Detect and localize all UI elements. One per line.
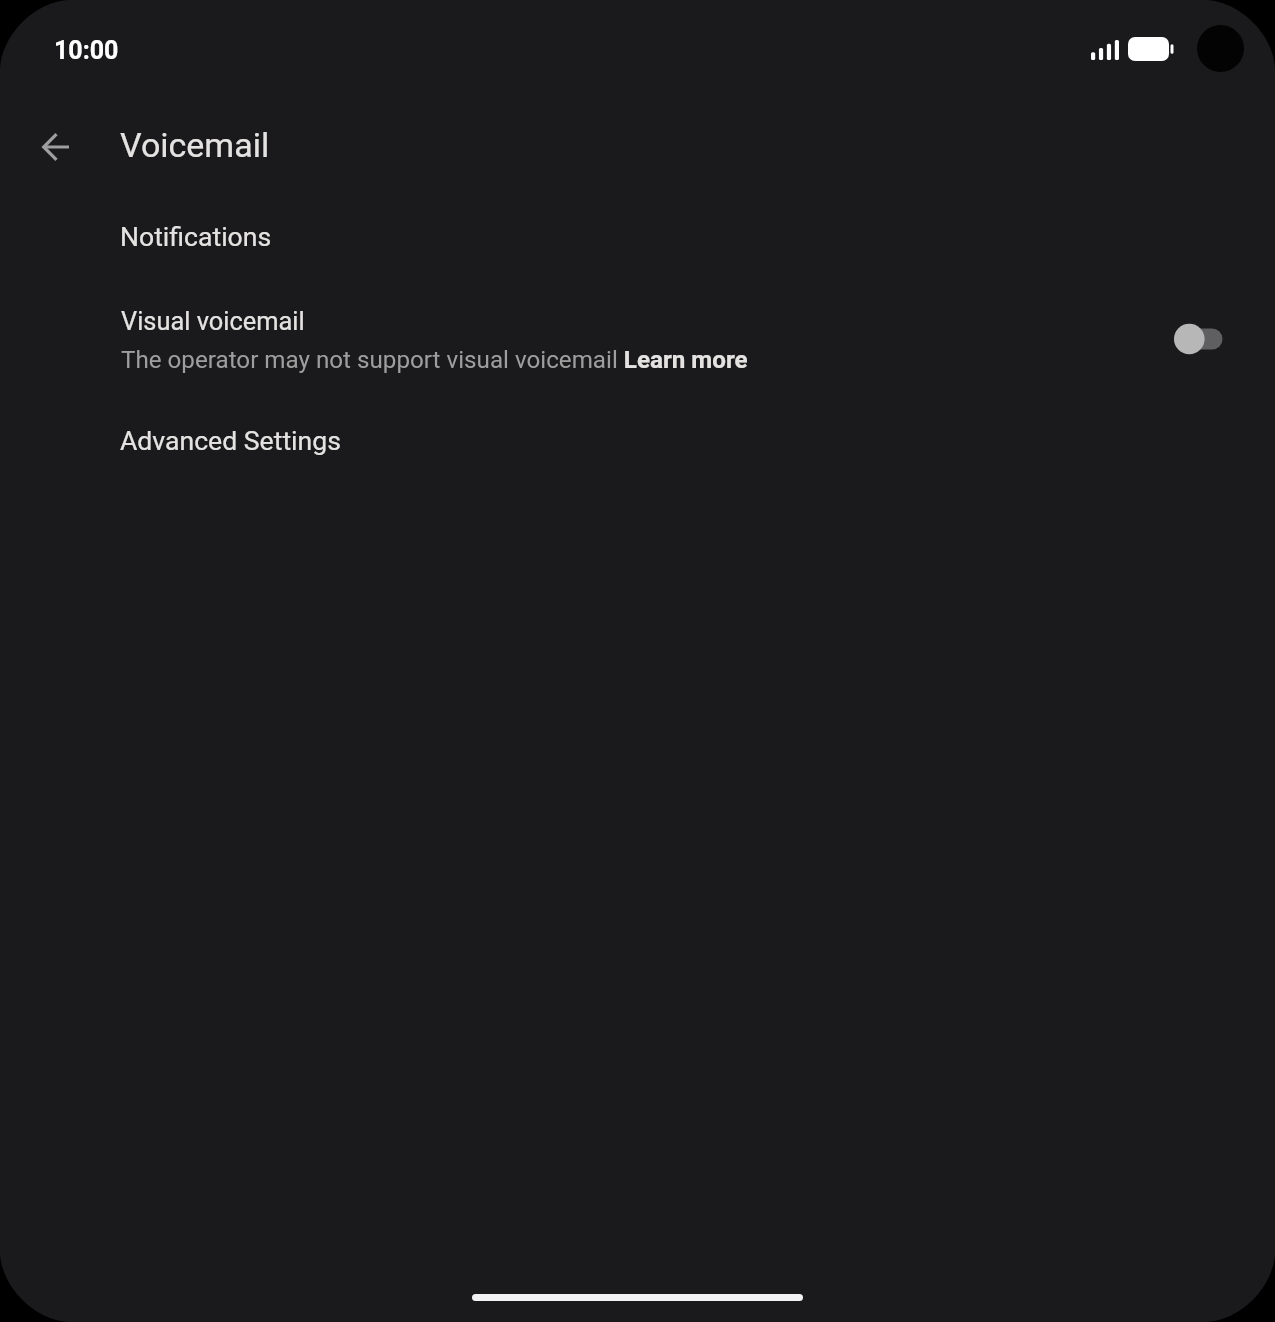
staticText: 10:00 (54, 35, 119, 65)
staticText: The operator may not support visual voic… (121, 347, 748, 374)
button[interactable]: Visual voicemail (0, 280, 1275, 398)
staticText: Notifications (120, 222, 272, 252)
button[interactable]: Visual voicemail toggle (1174, 319, 1226, 359)
staticText: Advanced Settings (120, 426, 341, 456)
button[interactable]: Advanced Settings (0, 398, 1275, 484)
staticText: Voicemail (120, 125, 270, 165)
button[interactable]: Back (32, 123, 80, 171)
button[interactable]: Notifications (0, 194, 1275, 280)
staticText: Visual voicemail (121, 306, 305, 336)
